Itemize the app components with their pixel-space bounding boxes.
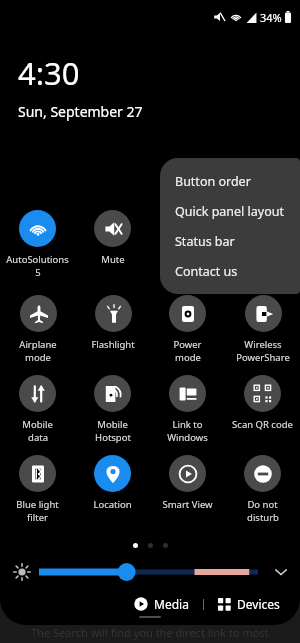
button[interactable]: Media [128,592,195,616]
staticText: Contact us [175,263,238,280]
staticText: Mobile [22,418,53,431]
staticText: disturb [247,511,279,524]
staticText: Quick panel layout [175,203,285,220]
button[interactable]: Status bar [160,226,300,256]
button[interactable]: Quick panel layout [160,196,300,226]
staticText: Power [173,338,202,351]
button[interactable]: Expand brightness settings [268,559,294,585]
staticText: mode [25,351,51,364]
staticText: Blue light [16,498,59,511]
staticText: Do not [247,498,278,511]
button[interactable]: Scan QR code [232,370,293,431]
button[interactable]: AutoSolutions [6,205,69,279]
staticText: 4:30 [18,52,80,94]
button[interactable]: Wireless [236,290,290,364]
staticText: Scan QR code [232,418,293,431]
button[interactable]: Link to [167,370,208,444]
staticText: Media [154,596,189,612]
button[interactable]: Do not [244,450,281,524]
staticText: Airplane [19,338,57,351]
button[interactable]: Devices [212,592,286,616]
button[interactable]: Airplane [19,290,57,364]
staticText: AutoSolutions [6,253,69,266]
button[interactable]: Button order [160,166,300,196]
staticText: 5 [35,266,41,279]
staticText: Status bar [175,233,235,250]
staticText: Devices [237,596,280,612]
staticText: Link to [172,418,203,431]
button[interactable]: Mute [94,205,131,266]
button[interactable]: Smart View [162,450,213,511]
button[interactable]: Mobile [19,370,56,444]
button[interactable]: Contact us [160,256,300,286]
staticText: Flashlight [91,338,135,351]
staticText: mode [175,351,201,364]
staticText: Mobile [97,418,128,431]
staticText: Smart View [162,498,213,511]
staticText: The Search will find you the direct link… [31,625,269,640]
staticText: Mute [101,253,125,266]
button[interactable]: Location [93,450,132,511]
staticText: Hotspot [95,431,131,444]
button[interactable]: Flashlight [91,290,135,351]
staticText: Location [93,498,132,511]
staticText: filter [27,511,48,524]
staticText: data [28,431,48,444]
staticText: Sun, September 27 [18,102,143,121]
staticText: PowerShare [236,351,290,364]
staticText: Button order [175,173,251,190]
button[interactable]: Mobile [94,370,131,444]
staticText: Wireless [244,338,282,351]
button[interactable]: Power [169,290,206,364]
staticText: Windows [167,431,208,444]
staticText: 34% [260,10,282,25]
button[interactable]: Blue light [16,450,59,524]
